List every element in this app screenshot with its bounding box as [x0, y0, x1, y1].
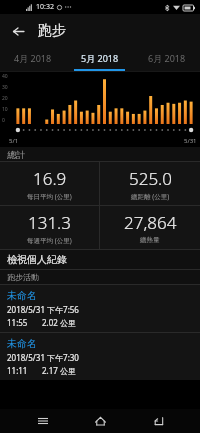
staticText: 40 [2, 73, 8, 80]
staticText: 每日平均 (公里) [27, 192, 72, 201]
button[interactable]: Back [143, 409, 173, 433]
staticText: 跑步 [38, 22, 66, 40]
staticText: 檢視個人紀錄 [7, 253, 67, 266]
staticText: 30 [2, 84, 8, 91]
staticText: 未命名 [7, 337, 37, 350]
staticText: 2.17 公里 [42, 365, 76, 376]
staticText: 2.02 公里 [42, 317, 76, 328]
staticText: 每週平均 (公里) [27, 236, 72, 245]
staticText: 16.9 [33, 167, 67, 190]
button[interactable]: Recent apps [28, 409, 58, 433]
staticText: 0 [2, 117, 5, 124]
staticText: 6月 2018 [148, 52, 186, 64]
button[interactable]: 131.3 [0, 206, 99, 249]
button[interactable]: 未命名 [0, 285, 200, 332]
staticText: 131.3 [28, 211, 71, 234]
button[interactable]: 未命名 [0, 333, 200, 380]
staticText: 10:32 [36, 2, 54, 12]
button[interactable]: 525.0 [100, 162, 200, 205]
button[interactable]: 檢視個人紀錄 [0, 250, 200, 269]
button[interactable]: Back [6, 19, 30, 43]
button[interactable]: 6月 2018 [133, 48, 200, 71]
staticText: 總計 [7, 149, 25, 160]
button[interactable]: 4月 2018 [0, 48, 66, 71]
staticText: 5月 2018 [81, 52, 119, 64]
staticText: 27,864 [124, 211, 177, 234]
button[interactable]: 27,864 [100, 206, 200, 249]
button[interactable]: Home [85, 409, 115, 433]
staticText: 跑步活動 [7, 272, 39, 282]
staticText: 4月 2018 [14, 52, 52, 64]
staticText: 11:55 [7, 317, 28, 328]
staticText: 2018/5/31 下午7:56 [7, 304, 79, 315]
staticText: 未命名 [7, 289, 37, 302]
staticText: 2018/5/31 下午7:30 [7, 352, 79, 363]
staticText: 20 [2, 95, 8, 102]
staticText: 11:11 [7, 365, 28, 376]
staticText: 5/1 [9, 137, 19, 145]
staticText: 總距離 (公里) [131, 192, 170, 201]
staticText: 525.0 [129, 167, 172, 190]
staticText: 總熱量 [140, 236, 160, 244]
staticText: 5/31 [184, 137, 197, 145]
button[interactable]: 5月 2018 [66, 48, 133, 71]
button[interactable]: 16.9 [0, 162, 99, 205]
staticText: 10 [2, 106, 8, 113]
